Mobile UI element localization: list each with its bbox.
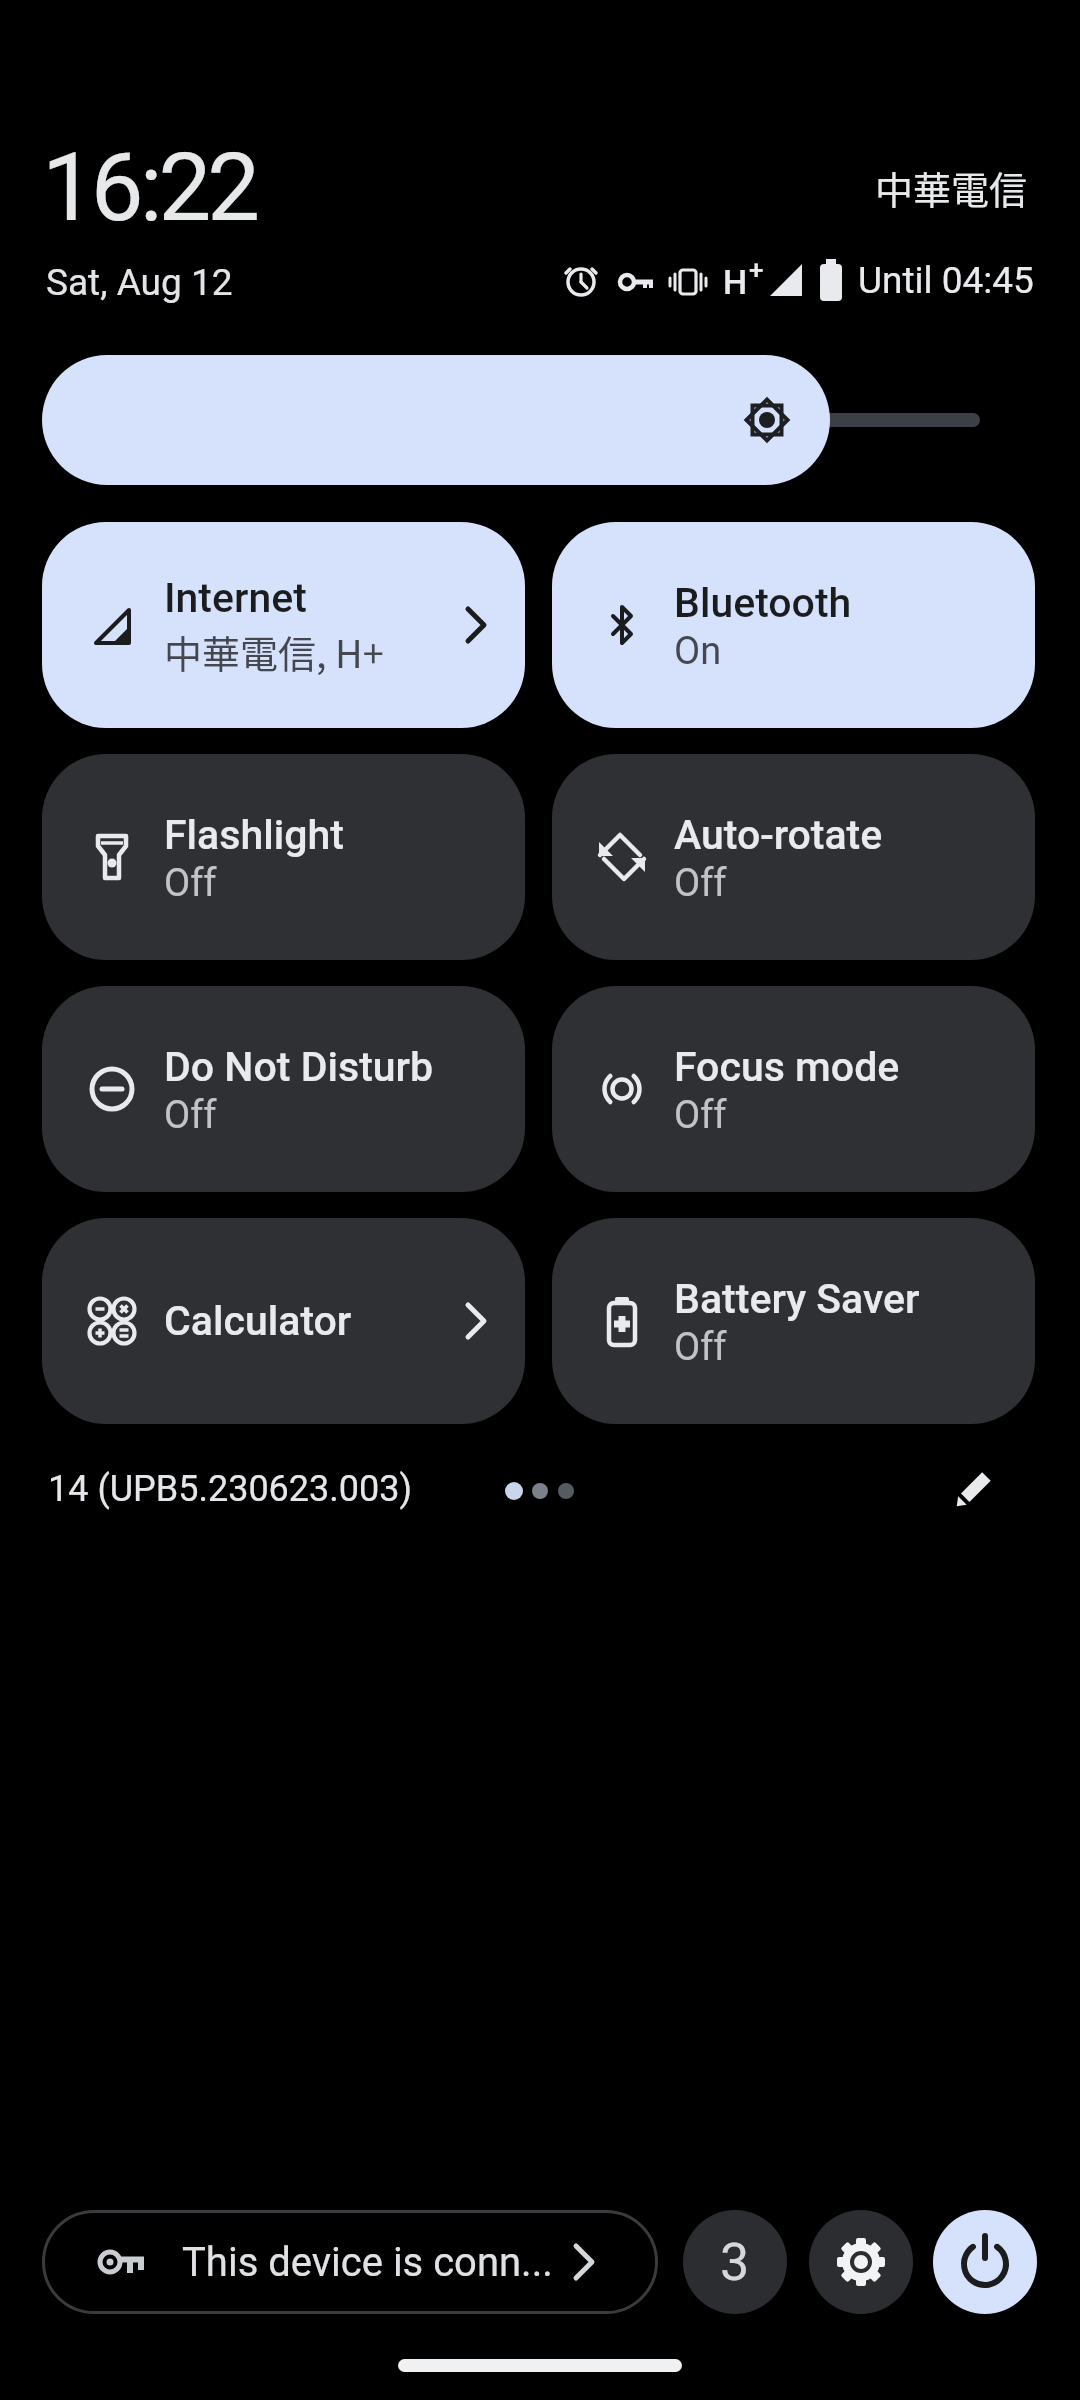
staticText: Internet bbox=[164, 574, 307, 622]
staticText: Bluetooth bbox=[674, 579, 852, 627]
button[interactable]: Focus mode bbox=[552, 986, 1035, 1192]
button[interactable] bbox=[42, 355, 830, 485]
staticText: Auto-rotate bbox=[674, 811, 883, 859]
staticText: Off bbox=[164, 861, 217, 906]
button[interactable]: Do Not Disturb bbox=[42, 986, 525, 1192]
staticText: Do Not Disturb bbox=[164, 1043, 434, 1091]
staticText: 16:22 bbox=[42, 133, 257, 243]
staticText: 中華電信 bbox=[875, 160, 1028, 215]
button[interactable]: 3 bbox=[683, 2210, 787, 2314]
staticText: Off bbox=[674, 1325, 727, 1370]
staticText: Focus mode bbox=[674, 1043, 900, 1091]
staticText: Battery Saver bbox=[674, 1275, 920, 1323]
staticText: Until 04:45 bbox=[858, 259, 1034, 302]
staticText: This device is conn... bbox=[182, 2239, 553, 2286]
staticText: 中華電信, H+ bbox=[164, 624, 384, 679]
staticText: Off bbox=[674, 1093, 727, 1138]
button[interactable]: Calculator bbox=[42, 1218, 525, 1424]
button[interactable] bbox=[809, 2210, 913, 2314]
button[interactable] bbox=[938, 1455, 1008, 1525]
staticText: Off bbox=[674, 861, 727, 906]
button[interactable]: Auto-rotate bbox=[552, 754, 1035, 960]
staticText: 14 (UPB5.230623.003) bbox=[48, 1468, 413, 1510]
staticText: On bbox=[674, 629, 722, 674]
staticText: 3 bbox=[720, 2232, 750, 2293]
button[interactable] bbox=[933, 2210, 1037, 2314]
staticText: Off bbox=[164, 1093, 217, 1138]
staticText: + bbox=[749, 255, 764, 285]
button[interactable]: Flashlight bbox=[42, 754, 525, 960]
button[interactable]: This device is conn... bbox=[42, 2210, 658, 2314]
staticText: Flashlight bbox=[164, 811, 344, 859]
button[interactable]: Battery Saver bbox=[552, 1218, 1035, 1424]
staticText: H bbox=[723, 262, 748, 302]
button[interactable]: Internet bbox=[42, 522, 525, 728]
staticText: Sat, Aug 12 bbox=[46, 261, 233, 304]
staticText: Calculator bbox=[164, 1297, 352, 1345]
button[interactable]: Bluetooth bbox=[552, 522, 1035, 728]
